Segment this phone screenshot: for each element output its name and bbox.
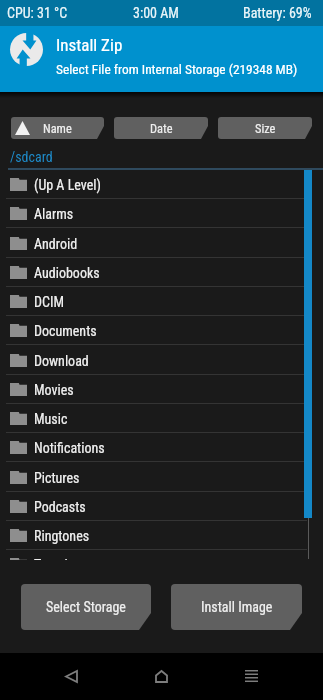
staticText: Audiobooks (34, 265, 100, 281)
button[interactable]: Home (138, 653, 185, 700)
staticText: Battery: 69% (243, 5, 312, 21)
staticText: Podcasts (34, 499, 86, 515)
button[interactable]: Name (11, 117, 104, 139)
staticText: Movies (34, 382, 74, 398)
button[interactable]: Date (114, 117, 208, 139)
staticText: Date (150, 121, 173, 136)
staticText: Alarms (34, 206, 74, 222)
button[interactable]: Documents (0, 316, 323, 345)
staticText: Download (34, 353, 89, 369)
button[interactable]: Audiobooks (0, 258, 323, 287)
staticText: Music (34, 411, 68, 427)
staticText: Ringtones (34, 528, 90, 544)
staticText: DCIM (34, 294, 65, 310)
button[interactable]: Select Storage (21, 584, 151, 630)
button[interactable]: Pictures (0, 463, 323, 492)
button[interactable]: Podcasts (0, 492, 323, 521)
button[interactable]: Size (218, 117, 312, 139)
staticText: Name (43, 121, 72, 136)
staticText: Android (34, 236, 78, 252)
button[interactable]: Back (48, 653, 95, 700)
staticText: Pictures (34, 470, 80, 486)
button[interactable]: Templates (0, 550, 323, 560)
button[interactable]: (Up A Level) (0, 170, 323, 199)
staticText: CPU: 31 °C (7, 5, 68, 21)
staticText: Install Image (201, 599, 273, 615)
button[interactable]: Android (0, 229, 323, 258)
button[interactable]: Ringtones (0, 521, 323, 550)
button[interactable]: Install Image (171, 584, 302, 630)
button[interactable]: Notifications (0, 433, 323, 462)
staticText: 3:00 AM (133, 5, 179, 21)
button[interactable]: Movies (0, 375, 323, 404)
staticText: Notifications (34, 440, 105, 456)
button[interactable]: Alarms (0, 199, 323, 228)
staticText: Documents (34, 323, 97, 339)
staticText: (Up A Level) (34, 177, 101, 193)
staticText: /sdcard (10, 149, 53, 165)
staticText: Install Zip (56, 35, 123, 55)
staticText: Select File from Internal Storage (21934… (56, 62, 298, 78)
button[interactable]: DCIM (0, 287, 323, 316)
button[interactable]: Download (0, 346, 323, 375)
button[interactable]: Music (0, 404, 323, 433)
staticText: Select Storage (46, 599, 126, 615)
button[interactable]: Menu (228, 653, 275, 700)
staticText: Size (255, 121, 276, 136)
staticText: Templates (34, 557, 92, 560)
